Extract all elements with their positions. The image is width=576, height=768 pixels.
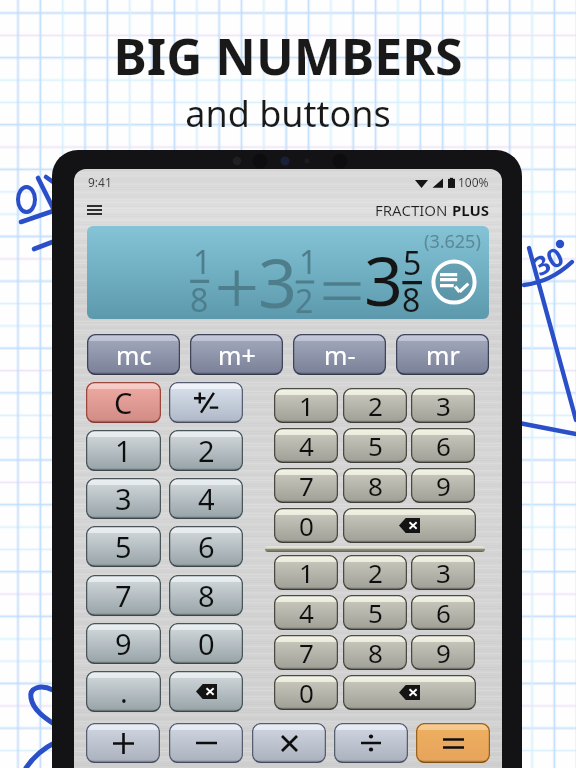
staticText: 3 — [115, 479, 132, 518]
staticText: (3.625) — [424, 229, 481, 254]
staticText: 3 — [258, 235, 297, 319]
button[interactable]: 6 — [411, 595, 475, 630]
staticText: 8 — [198, 576, 215, 615]
button[interactable]: 0 — [169, 623, 243, 664]
staticText: 6 — [198, 527, 215, 566]
staticText: 8 — [402, 278, 421, 319]
staticText: 1 — [299, 240, 318, 284]
button[interactable]: m+ — [190, 334, 283, 375]
staticText: 3 — [364, 233, 403, 319]
button[interactable]: 0 — [274, 508, 338, 543]
staticText: FRACTION — [375, 200, 448, 220]
staticText: and buttons — [185, 89, 391, 138]
staticText: 5 — [368, 428, 383, 463]
button[interactable]: 2 — [343, 555, 407, 590]
button[interactable]: 7 — [274, 635, 338, 670]
button[interactable]: 7 — [274, 468, 338, 503]
staticText: 2 — [295, 279, 314, 319]
button[interactable]: 8 — [343, 635, 407, 670]
button[interactable]: 1 — [274, 388, 338, 423]
button[interactable]: 5 — [343, 595, 407, 630]
button[interactable]: 8 — [169, 575, 243, 616]
staticText: 6 — [436, 428, 451, 463]
staticText: 8 — [368, 635, 383, 670]
staticText: 9:41 — [88, 174, 112, 190]
staticText: . — [120, 672, 128, 711]
staticText: 0 — [198, 624, 215, 663]
staticText: 7 — [115, 576, 132, 615]
button[interactable]: 4 — [274, 428, 338, 463]
button[interactable]: Subtract — [169, 723, 243, 763]
staticText: 9 — [436, 468, 451, 503]
staticText: 100% — [458, 174, 489, 190]
staticText: 4 — [198, 479, 215, 518]
staticText: 2 — [368, 555, 383, 590]
staticText: 6 — [436, 595, 451, 630]
staticText: 3 — [436, 388, 451, 423]
staticText: 9 — [436, 635, 451, 670]
staticText: mr — [426, 338, 460, 372]
button[interactable]: 6 — [411, 428, 475, 463]
button[interactable]: 8 — [343, 468, 407, 503]
button[interactable]: Delete — [343, 508, 476, 543]
button[interactable]: 5 — [343, 428, 407, 463]
staticText: 1 — [115, 431, 132, 470]
staticText: PLUS — [448, 200, 490, 220]
button[interactable]: Equals — [416, 723, 490, 763]
staticText: C — [114, 383, 133, 422]
button[interactable]: 9 — [86, 623, 161, 664]
button[interactable]: 3 — [86, 478, 161, 519]
button[interactable]: . — [86, 671, 161, 712]
staticText: 1 — [193, 240, 212, 284]
button[interactable]: FRACTION — [375, 200, 490, 220]
button[interactable]: 6 — [169, 526, 243, 567]
staticText: 0 — [299, 675, 314, 710]
button[interactable]: 5 — [86, 526, 161, 567]
button[interactable]: m- — [293, 334, 386, 375]
button[interactable]: 0 — [274, 675, 338, 710]
button[interactable]: Show calculation history — [431, 259, 477, 305]
button[interactable]: Multiply — [252, 723, 326, 763]
button[interactable]: Open navigation menu — [80, 196, 108, 224]
button[interactable]: Delete — [169, 671, 243, 712]
button[interactable]: 4 — [169, 478, 243, 519]
staticText: 2 — [198, 431, 215, 470]
staticText: 3 — [436, 555, 451, 590]
staticText: 8 — [190, 278, 209, 319]
staticText: 5 — [403, 241, 422, 285]
button[interactable]: Toggle sign — [169, 382, 243, 423]
staticText: m- — [324, 338, 356, 372]
button[interactable]: 2 — [169, 430, 243, 471]
staticText: 4 — [299, 428, 314, 463]
staticText: 8 — [368, 468, 383, 503]
button[interactable]: Divide — [334, 723, 408, 763]
button[interactable]: C — [86, 382, 161, 423]
staticText: 1 — [299, 388, 314, 423]
button[interactable]: 7 — [86, 575, 161, 616]
button[interactable]: 9 — [411, 468, 475, 503]
button[interactable]: Add — [86, 723, 160, 763]
button[interactable]: 2 — [343, 388, 407, 423]
staticText: 5 — [115, 527, 132, 566]
button[interactable]: 9 — [411, 635, 475, 670]
staticText: 7 — [299, 635, 314, 670]
staticText: 5 — [368, 595, 383, 630]
staticText: 30 — [526, 238, 569, 283]
button[interactable]: Delete — [343, 675, 476, 710]
staticText: mc — [116, 338, 152, 372]
button[interactable]: mc — [87, 334, 180, 375]
button[interactable]: 3 — [411, 555, 475, 590]
button[interactable]: 3 — [411, 388, 475, 423]
staticText: 2 — [368, 388, 383, 423]
staticText: 1 — [299, 555, 314, 590]
button[interactable]: 1 — [87, 226, 489, 319]
staticText: BIG NUMBERS — [113, 22, 463, 90]
button[interactable]: mr — [396, 334, 489, 375]
staticText: m+ — [218, 338, 256, 372]
button[interactable]: 1 — [86, 430, 161, 471]
staticText: 9 — [115, 624, 132, 663]
button[interactable]: 4 — [274, 595, 338, 630]
staticText: 0 — [299, 508, 314, 543]
button[interactable]: 1 — [274, 555, 338, 590]
staticText: 4 — [299, 595, 314, 630]
